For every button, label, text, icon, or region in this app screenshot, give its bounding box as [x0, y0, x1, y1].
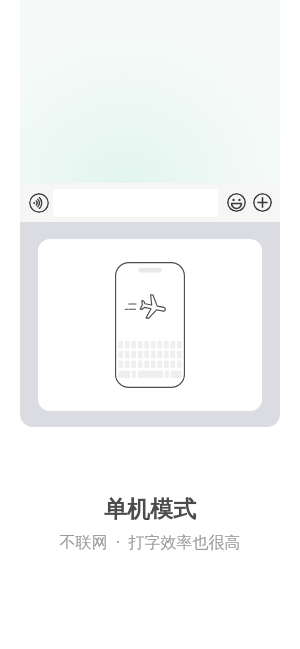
- staticText: 单机模式: [0, 495, 300, 524]
- button[interactable]: Emoji: [227, 193, 246, 212]
- button[interactable]: Voice input: [29, 193, 49, 213]
- button[interactable]: More options: [253, 193, 272, 212]
- staticText: 不联网 · 打字效率也很高: [0, 531, 300, 553]
